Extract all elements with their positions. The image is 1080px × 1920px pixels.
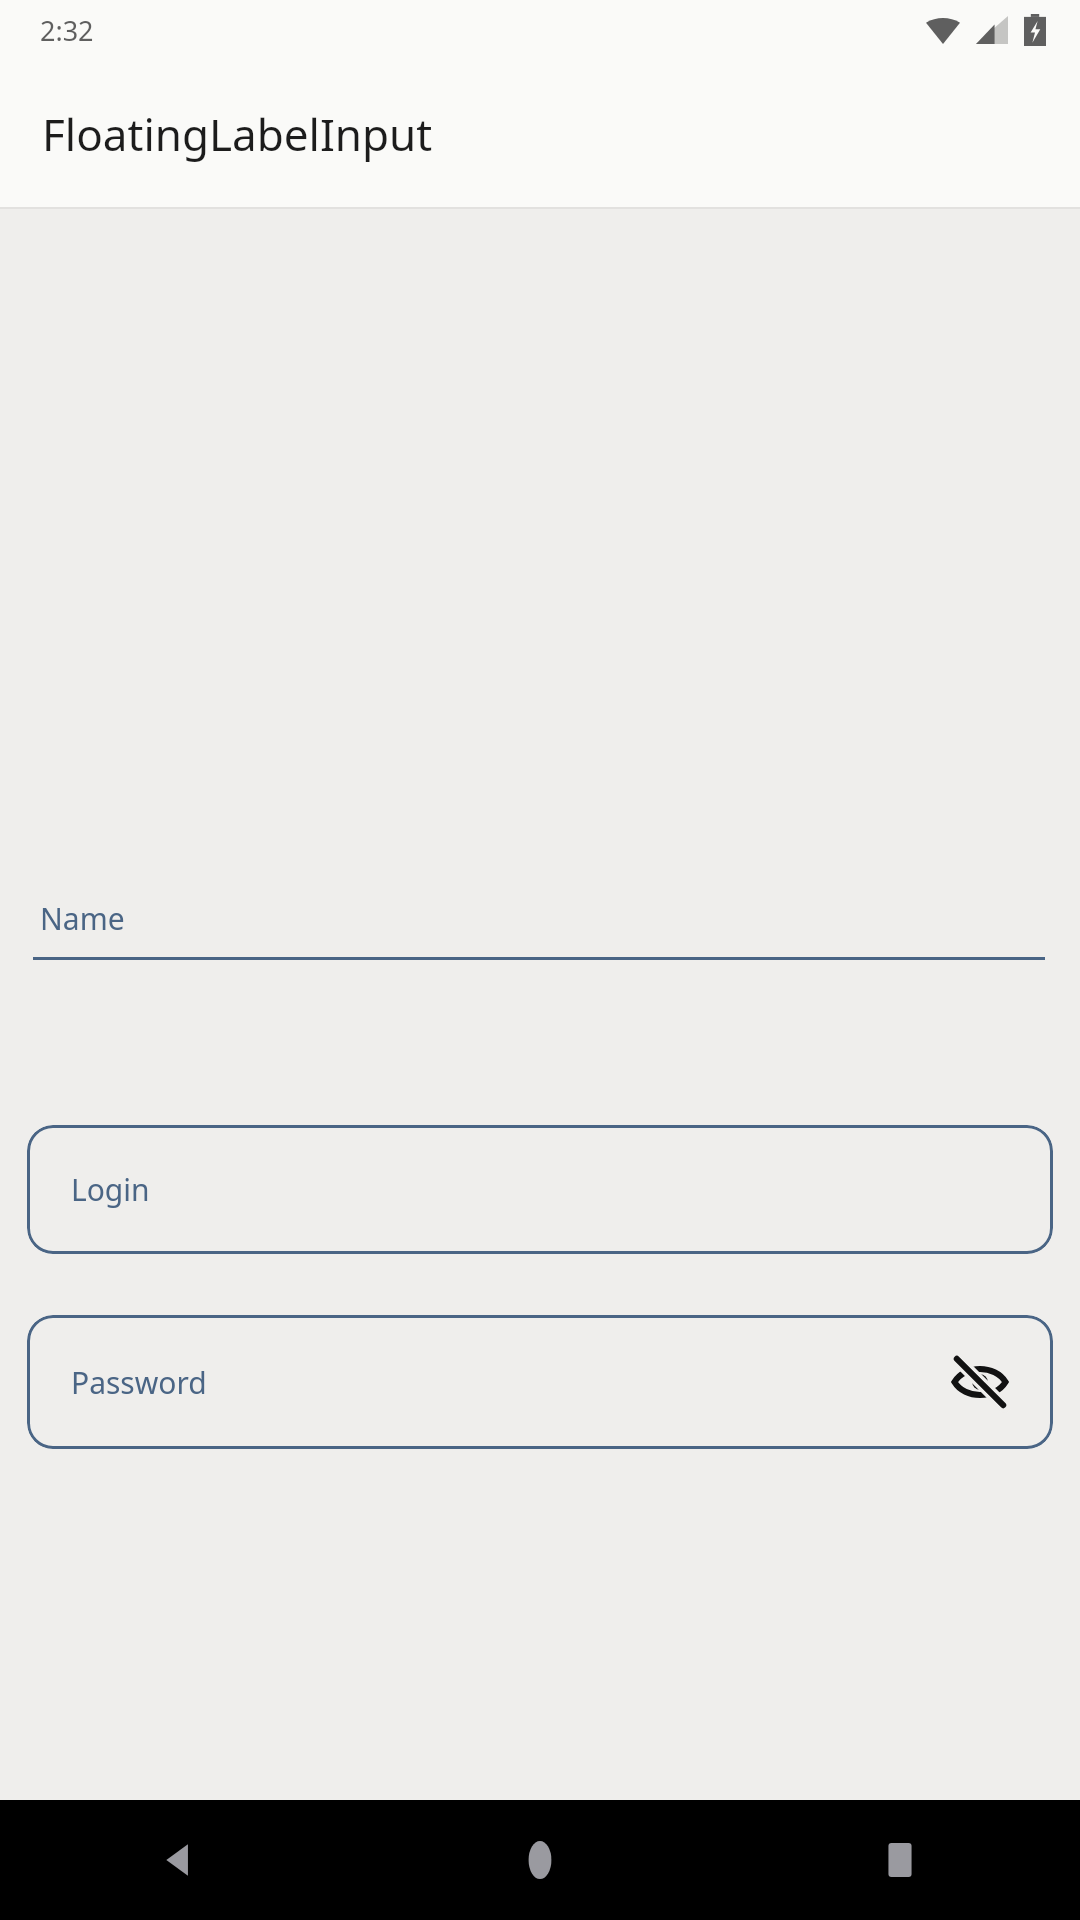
button[interactable]: Home [360, 1800, 720, 1920]
staticText: Password [71, 1362, 207, 1403]
button[interactable]: Show password [949, 1351, 1011, 1413]
button[interactable]: Login [27, 1125, 1053, 1254]
staticText: Login [71, 1169, 150, 1210]
staticText: FloatingLabelInput [42, 104, 433, 164]
button[interactable]: Password [27, 1315, 1053, 1449]
button[interactable]: Recent apps [720, 1800, 1080, 1920]
button[interactable]: Back [0, 1800, 360, 1920]
button[interactable]: Name [33, 898, 1045, 960]
staticText: 2:32 [40, 12, 94, 49]
staticText: Name [40, 898, 125, 939]
